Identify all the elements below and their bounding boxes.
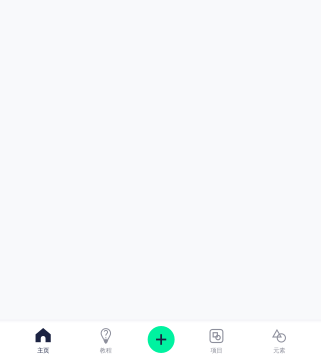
staticText: 教程 [100,346,112,354]
button[interactable]: 新建 [137,319,185,360]
button[interactable]: 项目 [185,319,248,360]
button[interactable]: 教程 [74,319,137,360]
staticText: 项目 [210,346,222,354]
button[interactable]: 主页 [12,319,74,360]
staticText: 元素 [273,346,285,354]
staticText: 主页 [37,346,49,354]
button[interactable]: 元素 [248,319,310,360]
